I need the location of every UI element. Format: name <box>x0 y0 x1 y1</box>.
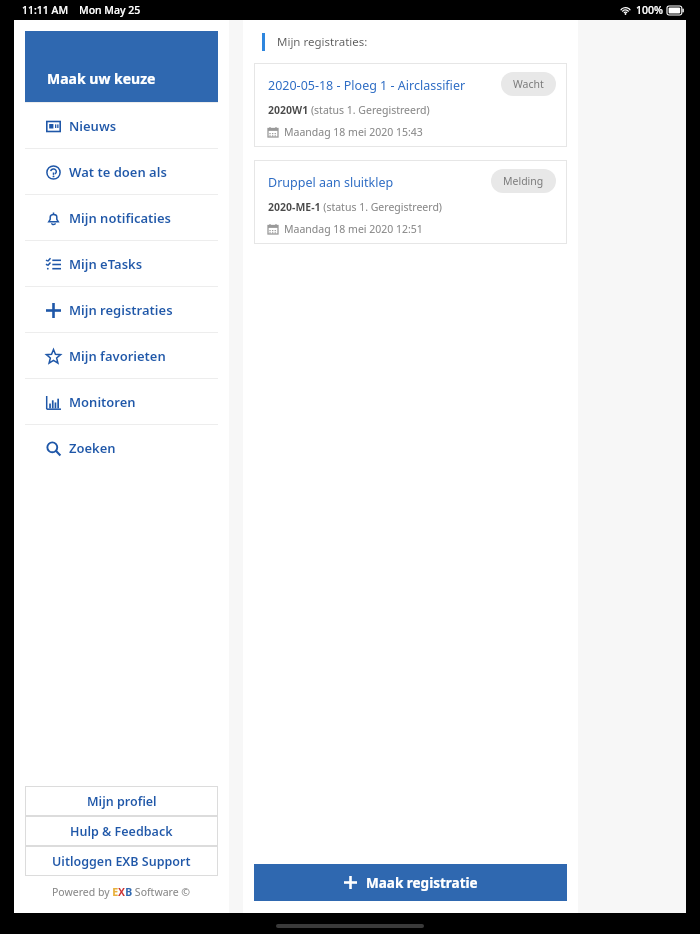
button[interactable]: Nieuws <box>25 103 218 148</box>
staticText: Mijn registraties: <box>277 34 368 50</box>
staticText: Mijn registraties <box>69 301 173 319</box>
button[interactable]: Mijn profiel <box>25 786 218 816</box>
button[interactable]: Melding <box>491 169 556 193</box>
button[interactable]: Hulp & Feedback <box>25 816 218 846</box>
other: Mijn registraties <box>46 303 61 318</box>
other: Monitoren <box>46 395 61 410</box>
staticText: Nieuws <box>69 117 117 135</box>
staticText: Powered by EXB Software © <box>52 885 191 899</box>
other: Nieuws <box>46 119 61 134</box>
other: Wat te doen als <box>46 165 61 180</box>
staticText: Uitloggen EXB Support <box>52 853 191 870</box>
button[interactable]: Uitloggen EXB Support <box>25 846 218 876</box>
button[interactable]: Maak uw keuze <box>25 31 218 102</box>
other: Mijn eTasks <box>46 257 61 272</box>
button[interactable]: Mijn notificaties <box>25 195 218 240</box>
staticText: Zoeken <box>69 439 116 457</box>
other: Zoeken <box>46 441 61 456</box>
staticText: Mijn favorieten <box>69 347 166 365</box>
button[interactable]: Wacht <box>501 72 556 96</box>
staticText: 2020W1 (status 1. Geregistreerd) <box>268 103 430 117</box>
staticText: Mijn eTasks <box>69 255 143 273</box>
staticText: Maak registratie <box>366 874 478 892</box>
staticText: Hulp & Feedback <box>70 823 173 840</box>
staticText: Melding <box>503 174 544 188</box>
button[interactable]: Mijn eTasks <box>25 241 218 286</box>
staticText: Wacht <box>513 77 544 91</box>
button[interactable]: 2020-05-18 - Ploeg 1 - Airclassifier <box>254 63 567 147</box>
staticText: Wat te doen als <box>69 163 167 181</box>
staticText: Druppel aan sluitklep <box>268 174 394 191</box>
button[interactable]: Mijn registraties <box>25 287 218 332</box>
button[interactable]: Maak registratie <box>254 864 567 901</box>
button[interactable]: Mijn favorieten <box>25 333 218 378</box>
staticText: 11:11 AM <box>22 3 69 17</box>
staticText: Maandag 18 mei 2020 15:43 <box>284 125 423 139</box>
staticText: 2020-ME-1 (status 1. Geregistreerd) <box>268 200 443 214</box>
staticText: Mon May 25 <box>79 3 141 17</box>
button[interactable]: Monitoren <box>25 379 218 424</box>
staticText: 2020-05-18 - Ploeg 1 - Airclassifier <box>268 77 466 94</box>
staticText: Mijn profiel <box>87 793 157 810</box>
staticText: Maak uw keuze <box>47 69 156 88</box>
staticText: Maandag 18 mei 2020 12:51 <box>284 222 423 236</box>
staticText: 100% <box>636 3 663 17</box>
button[interactable]: Wat te doen als <box>25 149 218 194</box>
staticText: Mijn notificaties <box>69 209 171 227</box>
button[interactable]: Druppel aan sluitklep <box>254 160 567 244</box>
button[interactable]: Zoeken <box>25 425 218 470</box>
other: Mijn notificaties <box>46 211 61 226</box>
staticText: Monitoren <box>69 393 136 411</box>
other: Mijn favorieten <box>46 349 61 364</box>
